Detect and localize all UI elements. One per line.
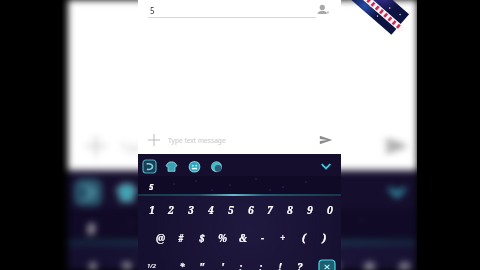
button[interactable]: Add attachment [85,135,106,156]
staticText: 6 [260,256,271,270]
staticText: ? [297,260,303,270]
staticText: 7 [267,203,273,217]
staticText: % [218,231,227,245]
button[interactable]: ' [213,258,231,270]
staticText: 0 [399,256,409,270]
staticText: 5 [228,203,234,217]
staticText: ; [259,260,263,270]
button[interactable]: 5 [144,178,166,194]
button[interactable]: Themes [115,181,138,204]
button[interactable]: 5 [215,253,246,270]
staticText: 5 [149,181,154,192]
button[interactable]: Languages [210,160,223,173]
staticText: 2 [168,203,174,217]
button[interactable]: 1/2 [145,259,163,270]
staticText: ) [322,231,326,245]
button[interactable]: $ [193,229,211,247]
button[interactable]: % [213,229,231,247]
button[interactable]: ) [315,229,333,247]
button[interactable]: Add recipient [314,2,332,20]
staticText: 5 [87,218,96,237]
button[interactable]: Languages [194,181,217,204]
button[interactable]: 0 [388,253,417,270]
staticText: 1 [149,203,155,217]
staticText: ( [302,231,306,245]
staticText: @ [156,231,166,245]
button[interactable]: " [193,258,211,270]
button[interactable]: 7 [261,201,279,219]
button[interactable]: + [274,229,292,247]
button[interactable]: Add attachment [148,134,160,146]
button[interactable]: & [234,229,252,247]
button[interactable]: 5 [78,212,117,240]
staticText: $ [199,231,205,245]
staticText: # [178,231,184,245]
staticText: 4 [190,256,201,270]
button[interactable]: Hide keyboard [386,181,407,202]
staticText: : [239,260,243,270]
button[interactable]: 1 [143,201,161,219]
button[interactable]: Type text message [117,130,371,160]
staticText: 3 [188,203,194,217]
button[interactable]: 6 [250,253,281,270]
staticText: 9 [307,203,313,217]
button[interactable]: 8 [318,253,350,270]
button[interactable]: ! [271,258,289,270]
button[interactable]: Emoji [155,181,178,204]
staticText: " [199,260,205,270]
button[interactable]: : [232,258,250,270]
staticText: 1 [87,256,98,270]
staticText: 8 [329,256,339,270]
staticText: Type text message [120,139,222,155]
button[interactable]: 3 [145,253,176,270]
staticText: - [261,231,265,245]
button[interactable]: 0 [321,201,339,219]
button[interactable]: Hide keyboard [320,160,332,172]
staticText: ! [278,260,282,270]
button[interactable]: Send message [385,134,409,158]
button[interactable]: Themes [165,160,178,173]
button[interactable]: Stickers [77,181,100,204]
button[interactable]: 1 [77,253,108,270]
staticText: 4 [208,203,214,217]
button[interactable]: 9 [301,201,319,219]
button[interactable]: Stickers [143,160,156,173]
button[interactable]: 2 [162,201,180,219]
button[interactable]: Send message [319,133,333,147]
button[interactable]: 4 [202,201,220,219]
staticText: Type text message [168,136,226,145]
staticText: + [280,231,286,245]
button[interactable]: @ [152,229,170,247]
button[interactable]: ; [252,258,270,270]
staticText: ' [221,260,224,270]
staticText: 8 [287,203,293,217]
button[interactable]: Emoji [188,160,201,173]
staticText: 7 [294,256,304,270]
staticText: * [179,260,186,270]
button[interactable]: - [254,229,272,247]
button[interactable]: Backspace [319,260,335,270]
button[interactable]: 9 [353,253,385,270]
staticText: 0 [327,203,333,217]
button[interactable]: ? [291,258,309,270]
button[interactable]: 5 [222,201,240,219]
staticText: 2 [120,256,131,270]
button[interactable]: 4 [180,253,211,270]
button[interactable]: 2 [110,253,141,270]
button[interactable]: Type text message [166,131,311,148]
staticText: 6 [248,203,254,217]
staticText: 1/2 [147,262,156,270]
button[interactable]: # [172,229,190,247]
staticText: 9 [364,256,374,270]
staticText: & [239,231,248,245]
button[interactable]: 5 [144,1,320,21]
button[interactable]: 7 [283,253,315,270]
button[interactable]: 8 [281,201,299,219]
button[interactable]: ( [295,229,313,247]
button[interactable]: 6 [242,201,260,219]
button[interactable]: * [173,258,191,270]
button[interactable]: 3 [182,201,200,219]
staticText: 5 [150,5,155,16]
